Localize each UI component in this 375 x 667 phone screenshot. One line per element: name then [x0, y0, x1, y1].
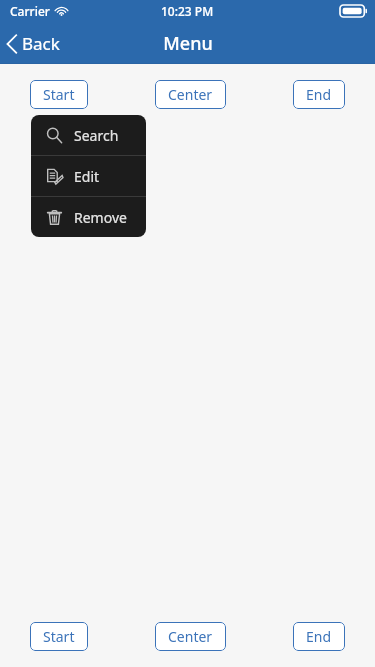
staticText: Back [22, 32, 60, 55]
button[interactable]: Search [31, 115, 146, 155]
staticText: Start [43, 85, 75, 104]
staticText: 10:23 PM [161, 3, 214, 19]
staticText: Carrier [10, 3, 50, 19]
button[interactable]: End [293, 80, 345, 109]
button[interactable]: Start [30, 80, 88, 109]
button[interactable]: Edit [31, 156, 146, 196]
other: Edit [46, 168, 63, 185]
staticText: Remove [74, 208, 127, 227]
button[interactable]: Remove [31, 197, 146, 237]
staticText: Menu [163, 31, 213, 56]
staticText: Center [168, 85, 213, 104]
staticText: Start [43, 627, 75, 646]
other: Remove [46, 209, 63, 226]
staticText: End [306, 627, 332, 646]
staticText: Search [74, 126, 119, 145]
other: Search [46, 127, 63, 144]
button[interactable]: Center [155, 622, 226, 651]
button[interactable]: Start [30, 622, 88, 651]
staticText: Edit [74, 167, 100, 186]
button[interactable]: Center [155, 80, 226, 109]
button[interactable]: Back [0, 28, 70, 59]
staticText: Center [168, 627, 213, 646]
button[interactable]: End [293, 622, 345, 651]
staticText: End [306, 85, 332, 104]
